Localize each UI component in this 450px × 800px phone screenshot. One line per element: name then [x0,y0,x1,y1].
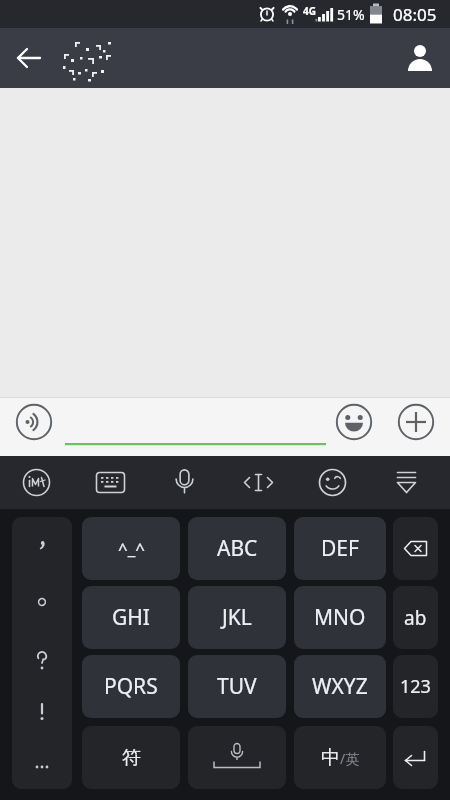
button[interactable] [15,403,53,441]
button[interactable] [14,460,59,505]
button[interactable] [393,517,438,580]
button[interactable] [236,460,281,505]
button[interactable]: ^_^ [82,517,180,580]
staticText: 中 [321,746,340,770]
button[interactable]: ABC [188,517,286,580]
button[interactable] [6,42,50,74]
button[interactable]: DEF [294,517,386,580]
button[interactable] [384,460,429,505]
staticText: 123 [400,674,431,699]
staticText: 符 [122,746,141,770]
staticText: ^_^ [118,537,145,560]
button[interactable] [397,403,435,441]
button[interactable] [188,726,286,789]
staticText: PQRS [104,672,158,701]
staticText: ab [404,605,427,631]
button[interactable]: ab [393,586,438,649]
button[interactable] [88,460,133,505]
staticText: DEF [321,534,359,563]
button[interactable]: PQRS [82,655,180,718]
button[interactable] [12,517,72,789]
staticText: WXYZ [312,672,368,701]
staticText: ABC [217,534,258,563]
staticText: TUV [217,672,257,701]
staticText: /英 [340,749,360,768]
staticText: MNO [314,603,366,632]
button[interactable]: WXYZ [294,655,386,718]
button[interactable]: GHI [82,586,180,649]
button[interactable]: 123 [393,655,438,718]
button[interactable]: MNO [294,586,386,649]
button[interactable] [398,42,442,74]
button[interactable]: 符 [82,726,180,789]
button[interactable]: JKL [188,586,286,649]
button[interactable]: TUV [188,655,286,718]
button[interactable] [393,726,438,789]
staticText: JKL [222,603,252,632]
button[interactable]: 中 [294,726,386,789]
button[interactable] [335,403,373,441]
staticText: 08:05 [393,3,437,26]
staticText: 4G [303,4,316,18]
staticText: 51% [337,5,365,24]
button[interactable] [162,460,207,505]
button[interactable] [310,460,355,505]
staticText: GHI [112,603,150,632]
